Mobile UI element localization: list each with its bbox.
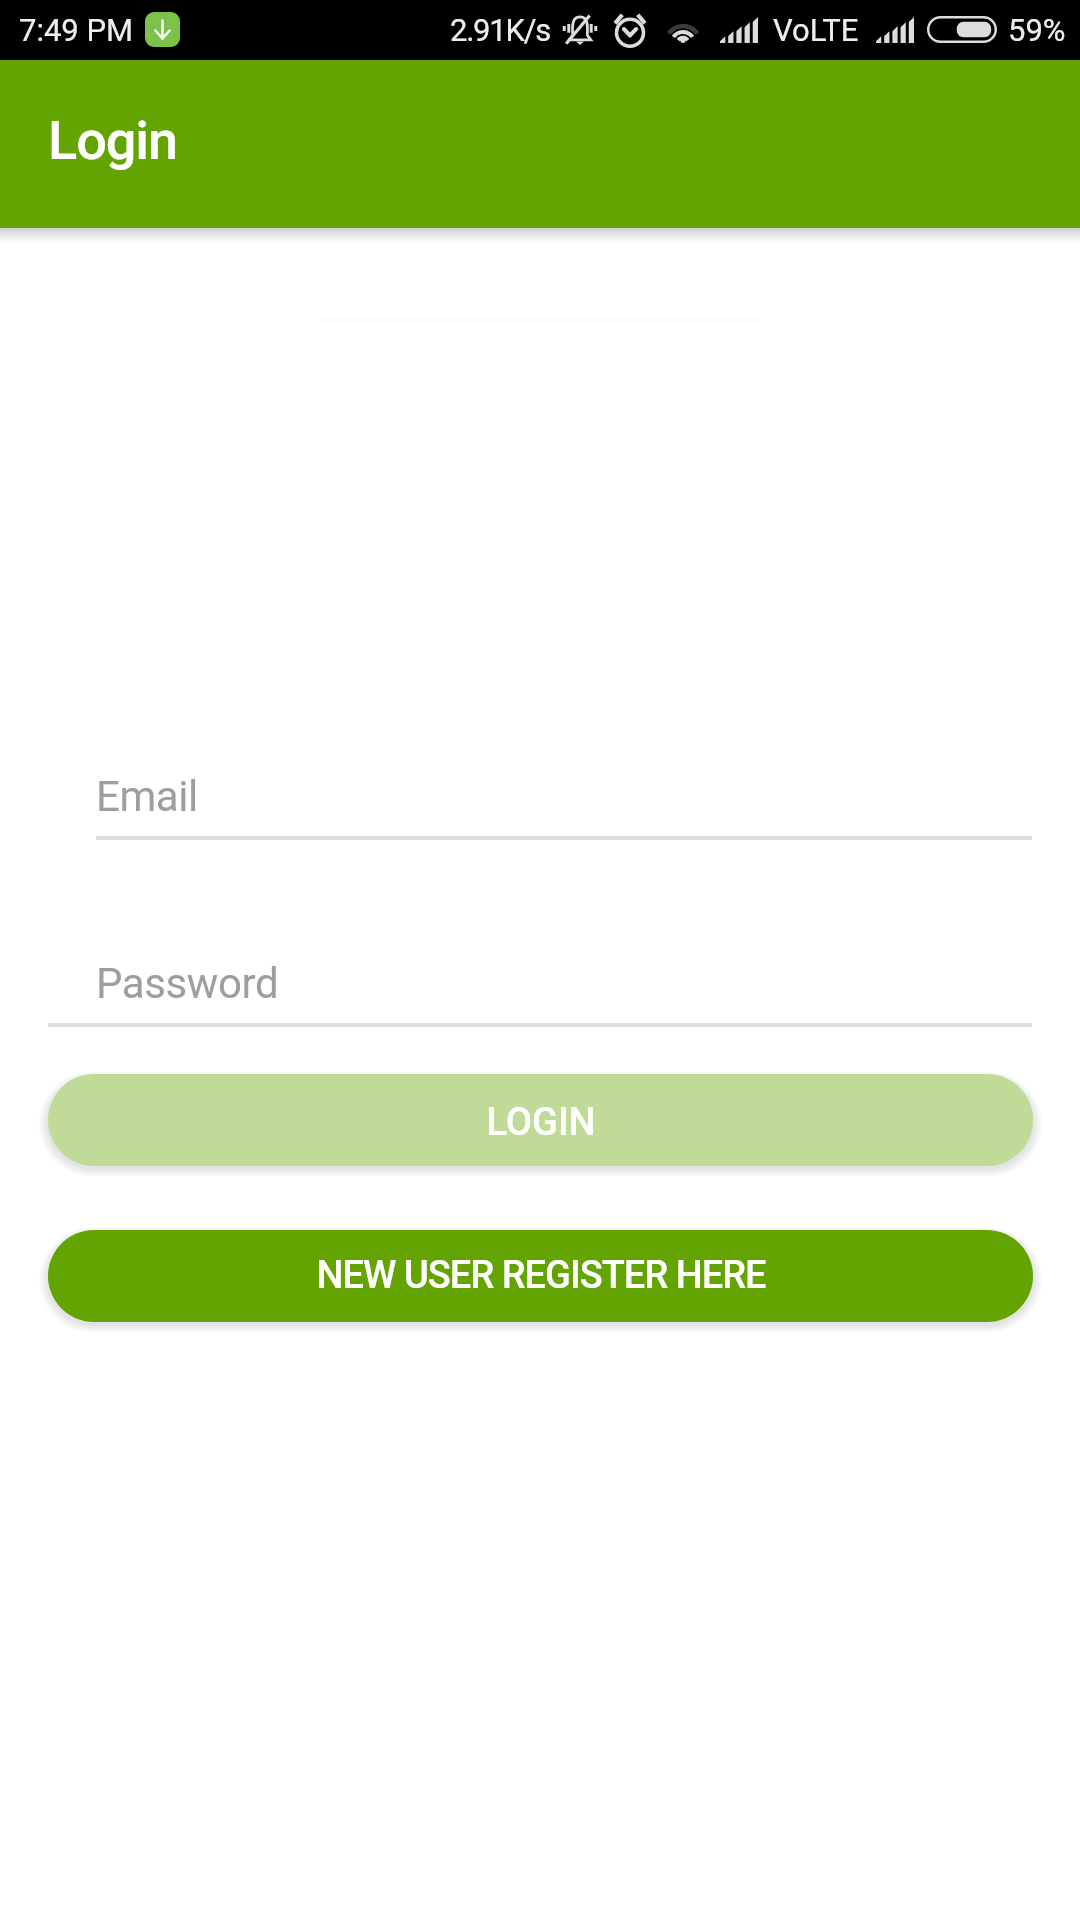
other: Silent mode bbox=[561, 9, 599, 51]
other: Mobile signal SIM 1 bbox=[720, 17, 758, 43]
other: Alarm set bbox=[612, 11, 648, 47]
staticText: VoLTE bbox=[773, 12, 859, 48]
staticText: Email bbox=[96, 772, 198, 821]
other: Download in progress bbox=[145, 12, 180, 47]
button[interactable]: Password bbox=[48, 945, 1032, 1027]
button[interactable]: LOGIN bbox=[48, 1074, 1033, 1166]
other: Wi-Fi bbox=[664, 16, 702, 43]
staticText: Password bbox=[96, 959, 279, 1008]
staticText: LOGIN bbox=[486, 1100, 596, 1145]
staticText: NEW USER REGISTER HERE bbox=[316, 1253, 766, 1298]
button[interactable]: NEW USER REGISTER HERE bbox=[48, 1230, 1033, 1322]
staticText: Login bbox=[48, 109, 178, 172]
staticText: 7:49 PM bbox=[19, 12, 134, 48]
other: Mobile signal SIM 2 bbox=[876, 17, 914, 43]
staticText: 2.91K/s bbox=[450, 12, 551, 48]
button[interactable]: Email bbox=[96, 758, 1032, 840]
other: Battery 59 percent bbox=[927, 16, 997, 43]
staticText: 59% bbox=[1008, 12, 1066, 48]
